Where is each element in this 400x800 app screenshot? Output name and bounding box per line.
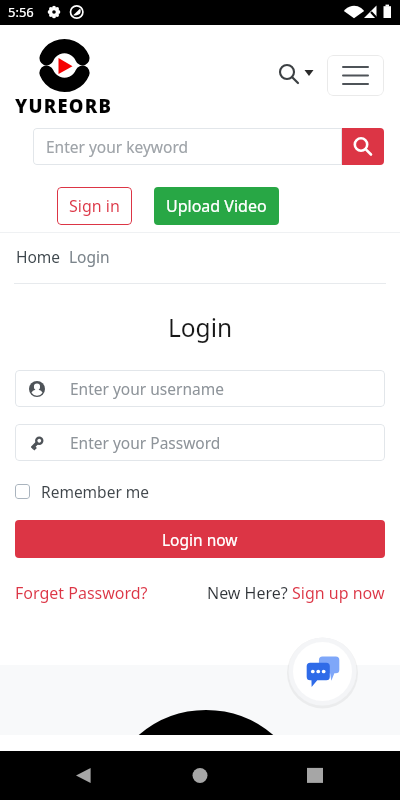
staticText: 5:56 xyxy=(8,3,34,21)
button[interactable]: Remember me xyxy=(15,481,150,502)
button[interactable]: Sign in xyxy=(57,187,132,225)
button[interactable]: Search xyxy=(342,128,384,165)
button[interactable]: Enter your keyword xyxy=(33,128,342,165)
staticText: Upload Video xyxy=(166,195,267,217)
staticText: Login xyxy=(0,311,400,344)
staticText: Sign in xyxy=(69,195,120,217)
button[interactable]: Sign up now xyxy=(292,582,385,604)
button[interactable]: Enter your username xyxy=(15,370,385,407)
button[interactable]: Search options xyxy=(272,56,320,92)
staticText: Login xyxy=(69,246,110,267)
staticText: Enter your Password xyxy=(70,432,221,453)
button[interactable]: Login now xyxy=(15,520,385,558)
staticText: Remember me xyxy=(41,481,150,502)
button[interactable]: Enter your Password xyxy=(15,424,385,461)
button[interactable]: Upload Video xyxy=(154,187,279,225)
staticText: Enter your username xyxy=(70,378,224,399)
button[interactable]: Forget Password? xyxy=(15,582,148,604)
staticText: New Here? xyxy=(207,582,292,604)
button[interactable]: Chat xyxy=(293,642,352,701)
button[interactable]: Menu xyxy=(327,55,384,96)
button[interactable]: Home xyxy=(16,246,61,267)
staticText: YUREORB xyxy=(15,93,113,118)
staticText: Enter your keyword xyxy=(46,136,189,157)
staticText: Login now xyxy=(162,529,238,550)
